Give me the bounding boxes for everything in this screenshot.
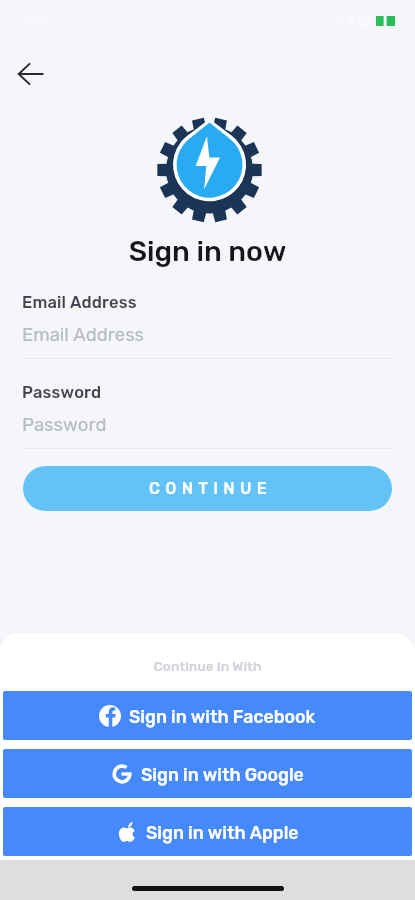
- staticText: Password: [22, 383, 102, 403]
- button[interactable]: Back: [8, 52, 52, 96]
- button[interactable]: Sign in with Apple: [3, 807, 412, 856]
- staticText: Email Address: [22, 324, 145, 346]
- staticText: Sign in now: [0, 234, 415, 268]
- staticText: Sign in with Facebook: [129, 706, 316, 727]
- staticText: Continue In With: [0, 658, 415, 674]
- button[interactable]: CONTINUE: [23, 466, 392, 511]
- staticText: Password: [22, 414, 107, 436]
- staticText: Sign in with Google: [141, 764, 304, 785]
- staticText: CONTINUE: [149, 479, 272, 498]
- staticText: Email Address: [22, 293, 137, 313]
- button[interactable]: Sign in with Facebook: [3, 691, 412, 740]
- button[interactable]: Sign in with Google: [3, 749, 412, 798]
- staticText: Sign in with Apple: [146, 822, 299, 843]
